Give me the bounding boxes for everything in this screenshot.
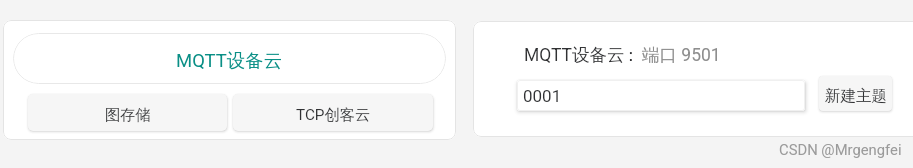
button[interactable]: TCP创客云 xyxy=(233,94,433,131)
staticText: MQTT设备云 xyxy=(176,49,283,72)
staticText: CSDN @Mrgengfei xyxy=(779,141,902,158)
staticText: 0001 xyxy=(523,86,562,106)
staticText: ： xyxy=(622,44,640,66)
staticText: 图存储 xyxy=(105,105,151,124)
button[interactable]: MQTT设备云 xyxy=(13,33,446,84)
button[interactable]: 0001 xyxy=(517,80,805,111)
button[interactable]: 新建主题 xyxy=(819,76,892,111)
staticText: TCP创客云 xyxy=(296,105,371,124)
staticText: MQTT设备云 xyxy=(524,44,625,66)
staticText: 新建主题 xyxy=(825,86,887,106)
staticText: 端口 9501 xyxy=(642,44,721,66)
button[interactable]: 图存储 xyxy=(28,94,227,131)
